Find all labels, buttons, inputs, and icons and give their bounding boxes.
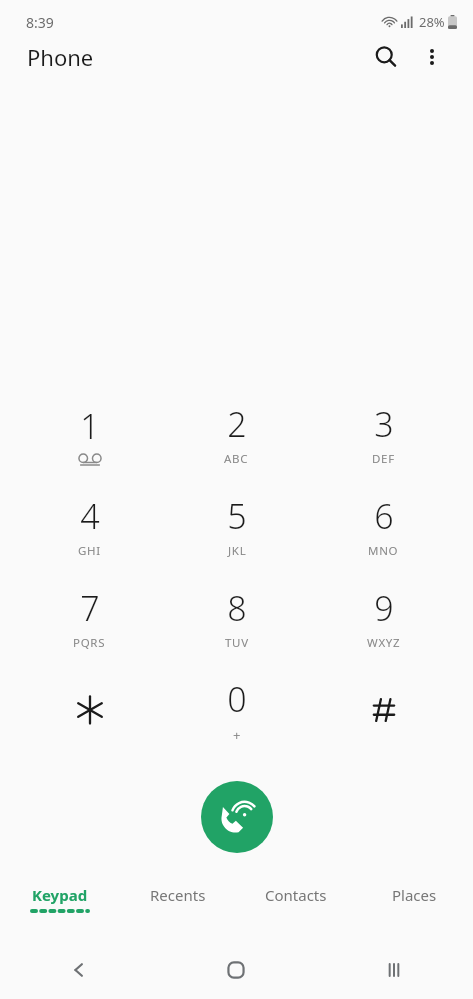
staticText: MNO bbox=[368, 543, 399, 559]
button[interactable] bbox=[310, 664, 457, 756]
staticText: 8 bbox=[227, 585, 247, 631]
button[interactable]: 6 bbox=[310, 480, 457, 572]
button[interactable]: More options bbox=[409, 34, 455, 80]
staticText: JKL bbox=[228, 543, 247, 559]
staticText: GHI bbox=[78, 543, 101, 559]
button[interactable]: Keypad bbox=[0, 885, 119, 933]
button[interactable]: 7 bbox=[16, 572, 163, 664]
button[interactable]: 4 bbox=[16, 480, 163, 572]
button[interactable]: Places bbox=[355, 885, 473, 933]
staticText: 6 bbox=[374, 493, 394, 539]
button[interactable]: Recent apps bbox=[315, 941, 473, 999]
staticText: Contacts bbox=[265, 885, 327, 905]
staticText: 1 bbox=[80, 403, 100, 449]
staticText: Keypad bbox=[32, 885, 88, 905]
button[interactable]: Back bbox=[0, 941, 157, 999]
staticText: WXYZ bbox=[367, 635, 401, 651]
staticText: Recents bbox=[150, 885, 206, 905]
staticText: 28% bbox=[419, 13, 445, 31]
staticText: 2 bbox=[227, 401, 247, 447]
button[interactable]: 8 bbox=[163, 572, 310, 664]
staticText: 7 bbox=[80, 585, 100, 631]
button[interactable] bbox=[16, 664, 163, 756]
staticText: DEF bbox=[372, 451, 395, 467]
staticText: 5 bbox=[227, 493, 247, 539]
staticText: PQRS bbox=[73, 635, 106, 651]
staticText: TUV bbox=[225, 635, 249, 651]
button[interactable]: 2 bbox=[163, 388, 310, 480]
button[interactable]: Contacts bbox=[237, 885, 355, 933]
button[interactable]: 0 bbox=[163, 664, 310, 756]
staticText: 3 bbox=[374, 401, 394, 447]
staticText: 4 bbox=[80, 493, 100, 539]
button[interactable]: 9 bbox=[310, 572, 457, 664]
button[interactable]: 3 bbox=[310, 388, 457, 480]
button[interactable]: Recents bbox=[119, 885, 237, 933]
staticText: Phone bbox=[27, 42, 94, 72]
staticText: Places bbox=[392, 885, 437, 905]
staticText: + bbox=[233, 726, 241, 744]
button[interactable]: Home bbox=[157, 941, 315, 999]
button[interactable]: Search bbox=[363, 34, 409, 80]
staticText: 9 bbox=[374, 585, 394, 631]
staticText: ABC bbox=[224, 451, 249, 467]
button[interactable]: Call bbox=[201, 781, 273, 853]
staticText: 8:39 bbox=[26, 13, 54, 32]
button[interactable]: 5 bbox=[163, 480, 310, 572]
button[interactable]: 1 bbox=[16, 388, 163, 480]
staticText: 0 bbox=[227, 676, 247, 722]
